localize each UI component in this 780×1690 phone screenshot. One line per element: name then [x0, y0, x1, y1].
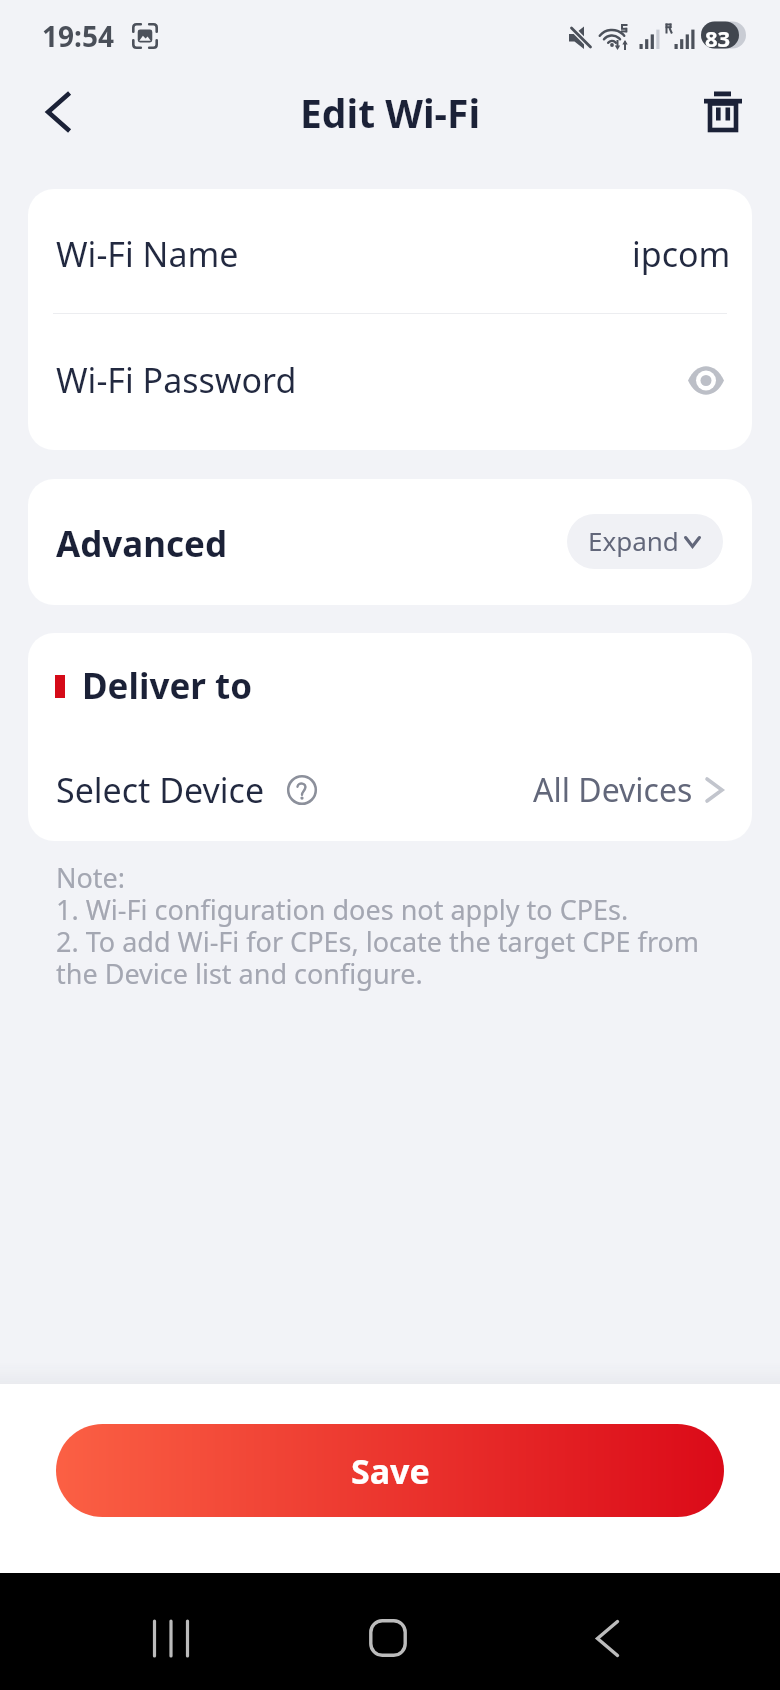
staticText: ipcom [632, 231, 731, 277]
button[interactable]: Wi-Fi Password [28, 314, 752, 450]
staticText: Wi-Fi Password [56, 357, 297, 403]
staticText: Save [351, 1448, 430, 1494]
button[interactable]: Home [345, 1595, 431, 1681]
button[interactable]: Recents [128, 1595, 214, 1681]
button[interactable]: Back [564, 1595, 650, 1681]
staticText: 19:54 [42, 17, 114, 55]
staticText: 83 [705, 23, 731, 51]
button[interactable]: Save [56, 1424, 724, 1517]
button[interactable]: Advanced [28, 479, 752, 605]
button[interactable]: Help [284, 772, 320, 808]
staticText: Select Device [56, 767, 265, 813]
staticText: Advanced [56, 520, 228, 568]
button[interactable]: Wi-Fi Name [28, 189, 752, 313]
button[interactable]: Show password [680, 354, 732, 406]
button[interactable]: Expand [567, 514, 723, 569]
staticText: Deliver to [82, 662, 253, 710]
button[interactable]: Back [14, 72, 102, 152]
staticText: All Devices [533, 768, 693, 812]
staticText: Expand [588, 523, 679, 558]
button[interactable]: Delete [679, 72, 767, 148]
staticText: Wi-Fi Name [56, 231, 239, 277]
button[interactable]: Select Device [28, 733, 752, 841]
staticText: Note: 1. Wi-Fi configuration does not ap… [56, 859, 700, 992]
staticText: Edit Wi-Fi [300, 86, 481, 139]
